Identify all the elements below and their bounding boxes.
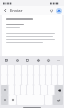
- button[interactable]: Symbols: [1, 95, 8, 105]
- button[interactable]: Account: [56, 8, 62, 14]
- button[interactable]: Shift: [1, 85, 8, 95]
- button[interactable]: Enter: [53, 95, 63, 105]
- button[interactable]: Translate: [35, 57, 41, 63]
- button[interactable]: Settings: [14, 57, 20, 63]
- button[interactable]: Clipboard: [3, 57, 9, 63]
- button[interactable]: Stickers: [24, 57, 30, 63]
- button[interactable]: Emoji: [45, 57, 51, 63]
- button[interactable]: Backspace: [55, 85, 63, 95]
- button[interactable]: Back: [2, 7, 9, 14]
- staticText: Enviar comentarios: [10, 8, 48, 14]
- button[interactable]: Attach file: [48, 7, 55, 14]
- button[interactable]: Emoji: [9, 95, 16, 105]
- button[interactable]: More options: [56, 58, 61, 63]
